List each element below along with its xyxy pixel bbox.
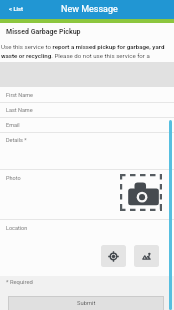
button[interactable]: Pick location on map — [134, 245, 159, 267]
staticText: Last Name — [6, 107, 33, 113]
staticText: Details * — [6, 137, 27, 143]
staticText: Location — [6, 225, 28, 231]
staticText: Missed Garbage Pickup — [6, 28, 81, 36]
staticText: Use this service to report a missed pick… — [1, 43, 172, 60]
staticText: Email — [6, 122, 20, 128]
button[interactable]: First Name — [0, 88, 174, 103]
staticText: < List — [9, 6, 24, 13]
button[interactable]: Photo — [0, 170, 174, 219]
button[interactable]: Use current location — [101, 245, 126, 267]
staticText: New Message — [61, 4, 118, 15]
button[interactable]: < List — [0, 0, 29, 19]
button[interactable]: Last Name — [0, 103, 174, 118]
button[interactable]: Email — [0, 118, 174, 133]
other: Add photo — [120, 174, 162, 211]
staticText: Submit — [77, 300, 96, 307]
button[interactable]: Details * — [0, 133, 174, 170]
button[interactable]: Submit — [8, 296, 164, 310]
staticText: First Name — [6, 92, 33, 98]
staticText: Photo — [6, 175, 21, 181]
staticText: * Required — [6, 279, 33, 286]
